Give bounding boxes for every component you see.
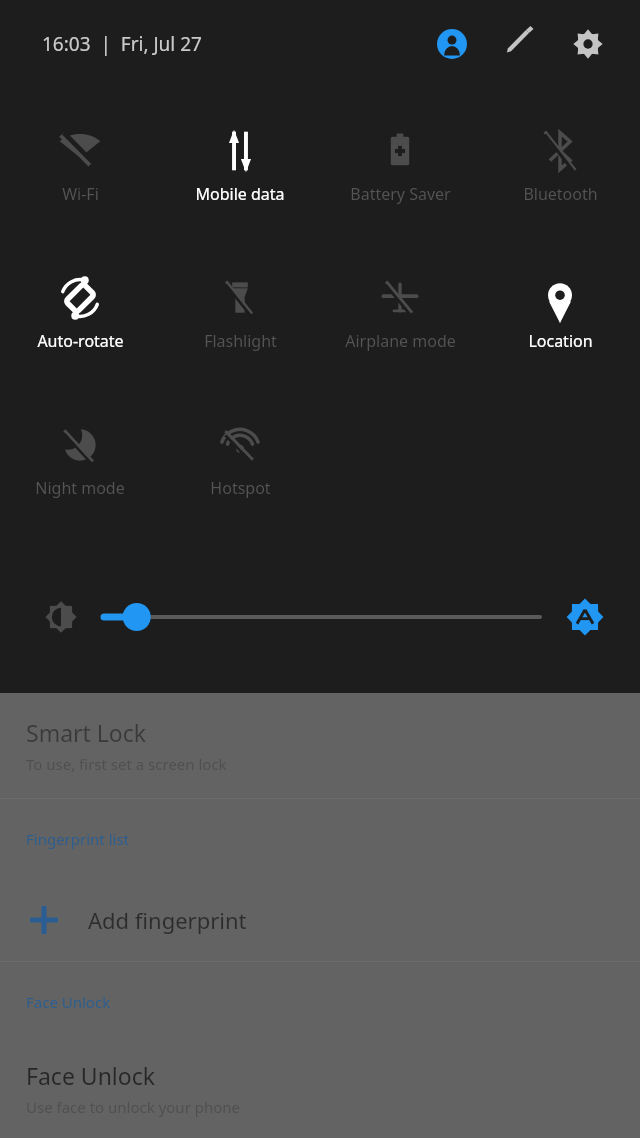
staticText: Smart Lock [26,717,147,748]
button[interactable]: Hotspot [160,418,320,503]
staticText: Battery Saver [350,183,451,205]
staticText: Mobile data [195,183,285,205]
button[interactable]: Flashlight [160,271,320,356]
button[interactable]: Brightness [34,590,88,644]
staticText: Face Unlock [26,992,111,1012]
staticText: Face Unlock [26,1060,156,1091]
button[interactable]: Mobile data [160,124,320,209]
staticText: 16:03 | Fri, Jul 27 [42,31,202,57]
staticText: Bluetooth [523,183,598,205]
button[interactable]: Night mode [0,418,160,503]
staticText: Hotspot [210,477,271,499]
staticText: Wi-Fi [62,183,99,205]
staticText: Airplane mode [345,330,456,352]
button[interactable]: Auto brightness [558,590,612,644]
button[interactable]: Edit tiles [494,18,546,70]
button[interactable]: Battery Saver [320,124,480,209]
staticText: To use, first set a screen lock [26,754,227,774]
staticText: Flashlight [204,330,277,352]
button[interactable]: Location [480,271,640,356]
button[interactable]: User account [426,18,478,70]
staticText: Night mode [35,477,125,499]
staticText: Location [528,330,593,352]
button[interactable]: Wi-Fi [0,124,160,209]
button[interactable]: Settings [562,18,614,70]
button[interactable]: Brightness slider [104,590,540,644]
staticText: Add fingerprint [88,905,247,935]
staticText: Auto-rotate [37,330,124,352]
staticText: Use face to unlock your phone [26,1097,241,1117]
button[interactable]: Add fingerprint [0,879,640,961]
button[interactable]: Airplane mode [320,271,480,356]
button[interactable]: Bluetooth [480,124,640,209]
staticText: Fingerprint list [26,829,130,849]
button[interactable]: Auto-rotate [0,271,160,356]
